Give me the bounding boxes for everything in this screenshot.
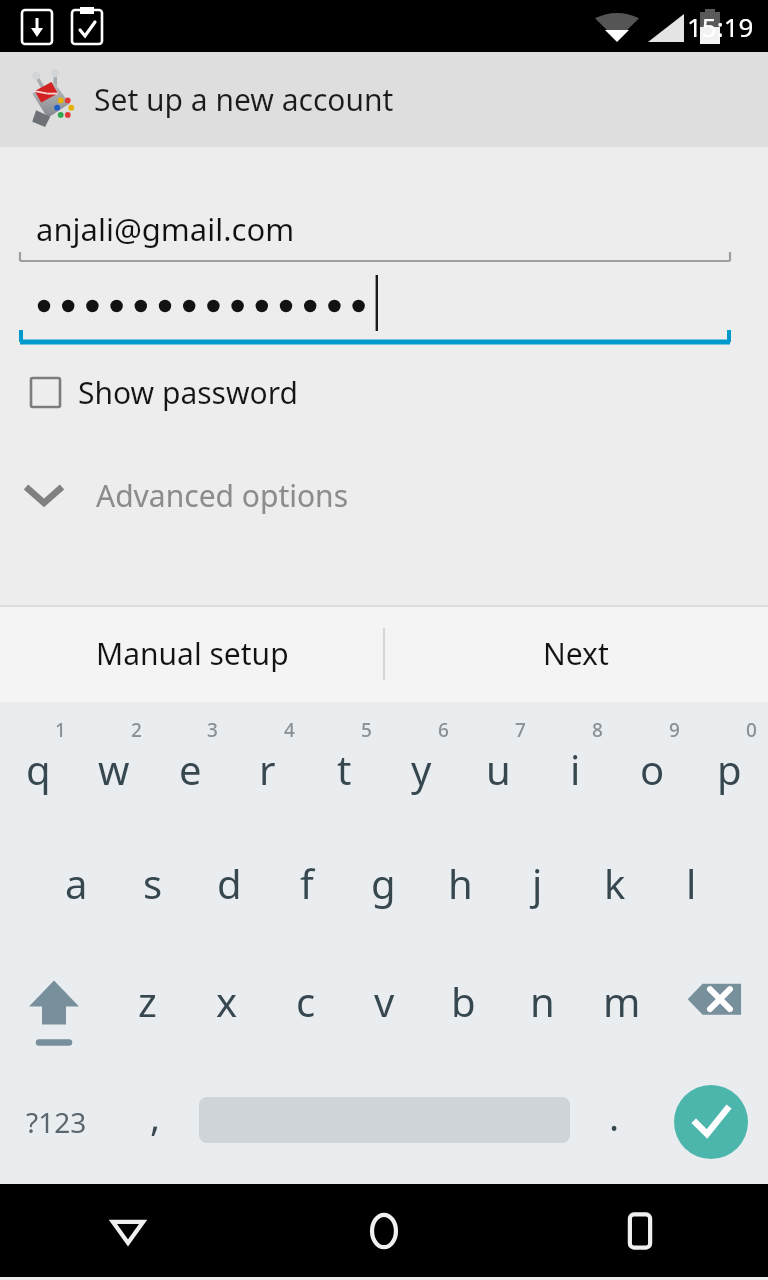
staticText: d [217, 856, 242, 910]
staticText: b [451, 974, 476, 1028]
staticText: Show password [78, 372, 298, 413]
staticText: l [686, 856, 697, 910]
staticText: f [300, 856, 314, 910]
button[interactable]: c [266, 942, 345, 1060]
staticText: 9 [669, 717, 680, 743]
staticText: p [717, 742, 742, 796]
staticText: 5 [361, 717, 372, 743]
button[interactable]: v [345, 942, 424, 1060]
staticText: Next [543, 633, 609, 674]
staticText: . [609, 1090, 620, 1142]
staticText: 4 [284, 717, 295, 743]
button[interactable]: Backspace [661, 942, 768, 1060]
staticText: h [448, 856, 473, 910]
staticText: 6 [438, 717, 449, 743]
staticText: k [604, 856, 626, 910]
staticText: r [259, 742, 276, 796]
button[interactable]: q [0, 702, 76, 824]
button[interactable]: g [345, 824, 422, 942]
staticText: s [143, 856, 163, 910]
staticText: g [371, 856, 396, 910]
button[interactable]: Next [384, 605, 768, 702]
button[interactable]: n [503, 942, 582, 1060]
staticText: 8 [592, 717, 603, 743]
button[interactable]: Recent apps [512, 1184, 768, 1277]
button[interactable]: ?123 [0, 1067, 112, 1177]
staticText: u [486, 742, 511, 796]
button[interactable]: Back [0, 1184, 256, 1277]
button[interactable]: i [537, 702, 614, 824]
button[interactable]: y [383, 702, 460, 824]
button[interactable]: u [460, 702, 537, 824]
button[interactable]: Advanced options [0, 457, 768, 533]
button[interactable]: f [268, 824, 345, 942]
staticText: 3 [207, 717, 218, 743]
button[interactable]: t [306, 702, 383, 824]
button[interactable]: , [112, 1067, 198, 1177]
button[interactable]: m [582, 942, 661, 1060]
button[interactable]: d [191, 824, 268, 942]
staticText: c [296, 974, 316, 1028]
button[interactable]: o [614, 702, 691, 824]
staticText: t [337, 742, 352, 796]
button[interactable]: z [108, 942, 187, 1060]
staticText: y [411, 742, 432, 796]
button[interactable]: Enter [653, 1067, 768, 1177]
button[interactable]: Manual setup [0, 605, 384, 702]
button[interactable]: k [576, 824, 653, 942]
button[interactable]: s [114, 824, 191, 942]
staticText: 7 [515, 717, 526, 743]
staticText: n [530, 974, 555, 1028]
button[interactable]: w [76, 702, 152, 824]
button[interactable] [0, 273, 768, 351]
staticText: q [26, 742, 51, 796]
staticText: e [179, 742, 202, 796]
staticText: ?123 [26, 1103, 87, 1141]
staticText: 0 [746, 717, 757, 743]
button[interactable]: . [575, 1067, 653, 1177]
button[interactable]: r [229, 702, 306, 824]
button[interactable]: Shift [0, 942, 108, 1060]
button[interactable]: h [422, 824, 499, 942]
staticText: Set up a new account [94, 79, 394, 120]
staticText: m [603, 974, 641, 1028]
staticText: Manual setup [96, 633, 289, 674]
staticText: a [65, 856, 88, 910]
staticText: z [138, 974, 157, 1028]
button[interactable]: Home [256, 1184, 512, 1277]
button[interactable]: Show password [0, 359, 768, 425]
staticText: o [640, 742, 665, 796]
button[interactable]: a [38, 824, 114, 942]
button[interactable]: l [653, 824, 730, 942]
staticText: x [216, 974, 238, 1028]
staticText: v [374, 974, 395, 1028]
button[interactable]: x [187, 942, 266, 1060]
button[interactable]: e [152, 702, 229, 824]
staticText: 2 [131, 717, 142, 743]
staticText: i [570, 742, 581, 796]
staticText: j [532, 856, 543, 910]
staticText: Advanced options [96, 475, 349, 516]
staticText: anjali@gmail.com [36, 208, 295, 250]
button[interactable]: p [691, 702, 768, 824]
staticText: 15:19 [687, 9, 754, 44]
staticText: w [98, 742, 130, 796]
staticText: 1 [55, 717, 66, 743]
staticText: , [150, 1090, 161, 1142]
button[interactable]: anjali@gmail.com [0, 193, 768, 265]
button[interactable]: j [499, 824, 576, 942]
button[interactable]: b [424, 942, 503, 1060]
